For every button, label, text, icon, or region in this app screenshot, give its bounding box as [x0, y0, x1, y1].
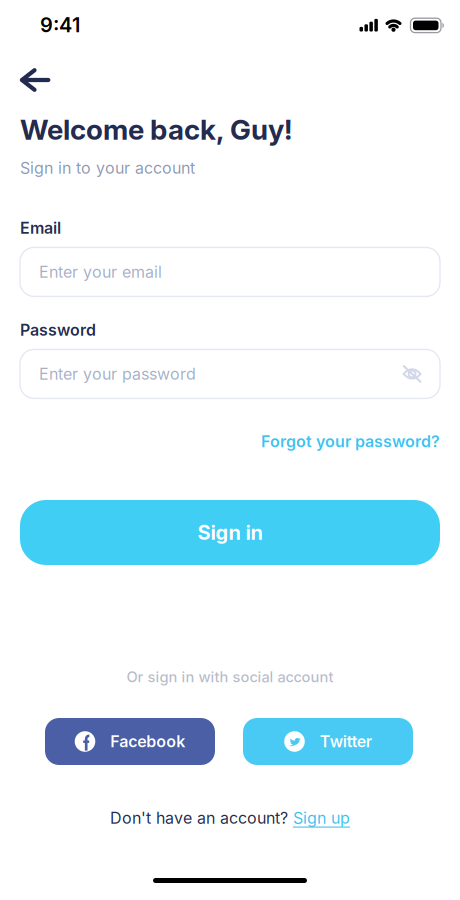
- staticText: 9:41: [40, 13, 80, 37]
- staticText: Enter your password: [39, 364, 196, 383]
- staticText: Twitter: [320, 732, 372, 751]
- staticText: Facebook: [110, 732, 185, 751]
- button[interactable]: Sign in: [20, 500, 440, 565]
- button[interactable]: Twitter: [243, 718, 413, 765]
- button[interactable]: Sign up: [293, 809, 350, 827]
- staticText: Forgot your password?: [261, 432, 440, 451]
- staticText: Sign in to your account: [20, 159, 195, 177]
- button[interactable]: [13, 60, 57, 100]
- staticText: Don't have an account?: [110, 809, 288, 827]
- button[interactable]: Forgot your password?: [20, 432, 440, 451]
- staticText: Or sign in with social account: [126, 668, 333, 686]
- staticText: Email: [20, 219, 61, 237]
- staticText: Password: [20, 321, 96, 339]
- staticText: Welcome back, Guy!: [20, 113, 292, 146]
- staticText: Sign up: [293, 809, 350, 827]
- button[interactable]: Enter your password: [20, 349, 440, 398]
- button[interactable]: Facebook: [45, 718, 215, 765]
- staticText: Enter your email: [39, 262, 162, 281]
- button[interactable]: [402, 366, 422, 382]
- staticText: Sign in: [197, 521, 262, 544]
- button[interactable]: Enter your email: [20, 247, 440, 296]
